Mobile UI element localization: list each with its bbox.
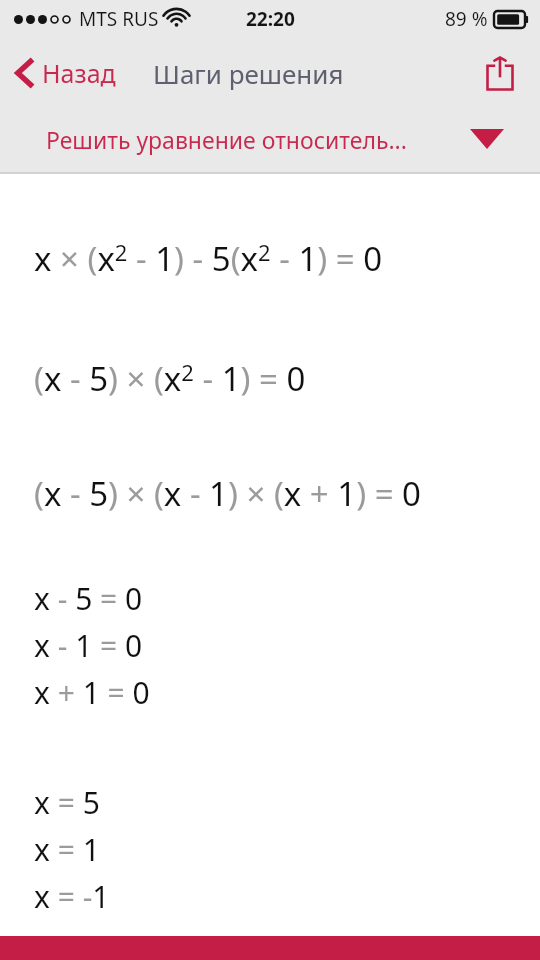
staticText: x = 5	[34, 782, 100, 823]
staticText: Назад	[42, 56, 116, 90]
staticText: MTS RUS	[79, 6, 159, 32]
button[interactable]: Share	[474, 47, 526, 99]
staticText: Решить уравнение относитель...	[46, 124, 407, 155]
staticText: x - 5 = 0	[34, 578, 143, 619]
staticText: 22:20	[246, 6, 295, 32]
staticText: 89 %	[445, 6, 488, 32]
staticText: (x - 5) × (x - 1) × (x + 1) = 0	[34, 471, 421, 516]
staticText: Шаги решения	[153, 56, 344, 91]
staticText: x = 1	[34, 829, 100, 870]
staticText: x - 1 = 0	[34, 625, 143, 666]
staticText: x + 1 = 0	[34, 672, 150, 713]
button[interactable]: Решить уравнение относитель...	[0, 108, 540, 170]
staticText: x = -1	[34, 876, 110, 917]
staticText: (x - 5) × (x2 - 1) = 0	[34, 356, 306, 401]
button[interactable]: Назад	[10, 50, 122, 96]
staticText: x × (x2 - 1) - 5(x2 - 1) = 0	[34, 236, 383, 281]
